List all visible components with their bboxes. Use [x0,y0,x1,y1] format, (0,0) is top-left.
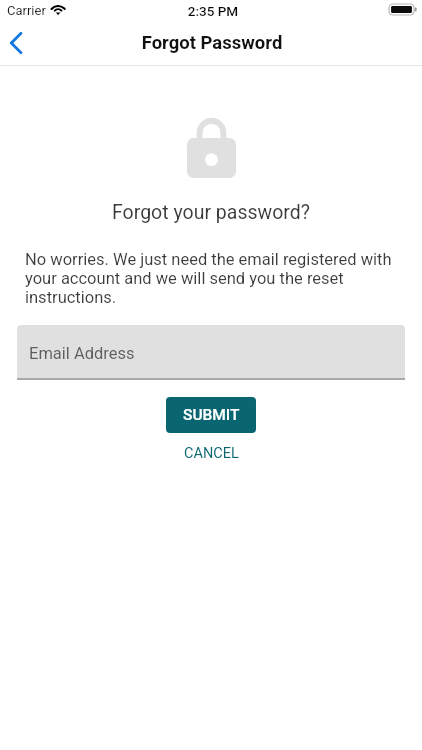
button[interactable]: Email Address [17,325,405,378]
staticText: Forgot Password [1,32,422,54]
staticText: No worries. We just need the email regis… [25,250,400,307]
button[interactable]: Back [0,26,40,64]
staticText: SUBMIT [183,406,240,424]
button[interactable]: SUBMIT [166,397,256,433]
staticText: CANCEL [184,445,239,462]
staticText: Carrier [7,3,46,18]
staticText: Email Address [29,344,135,363]
staticText: Forgot your password? [0,201,422,224]
button[interactable]: CANCEL [166,441,257,466]
staticText: 2:35 PM [2,3,422,19]
